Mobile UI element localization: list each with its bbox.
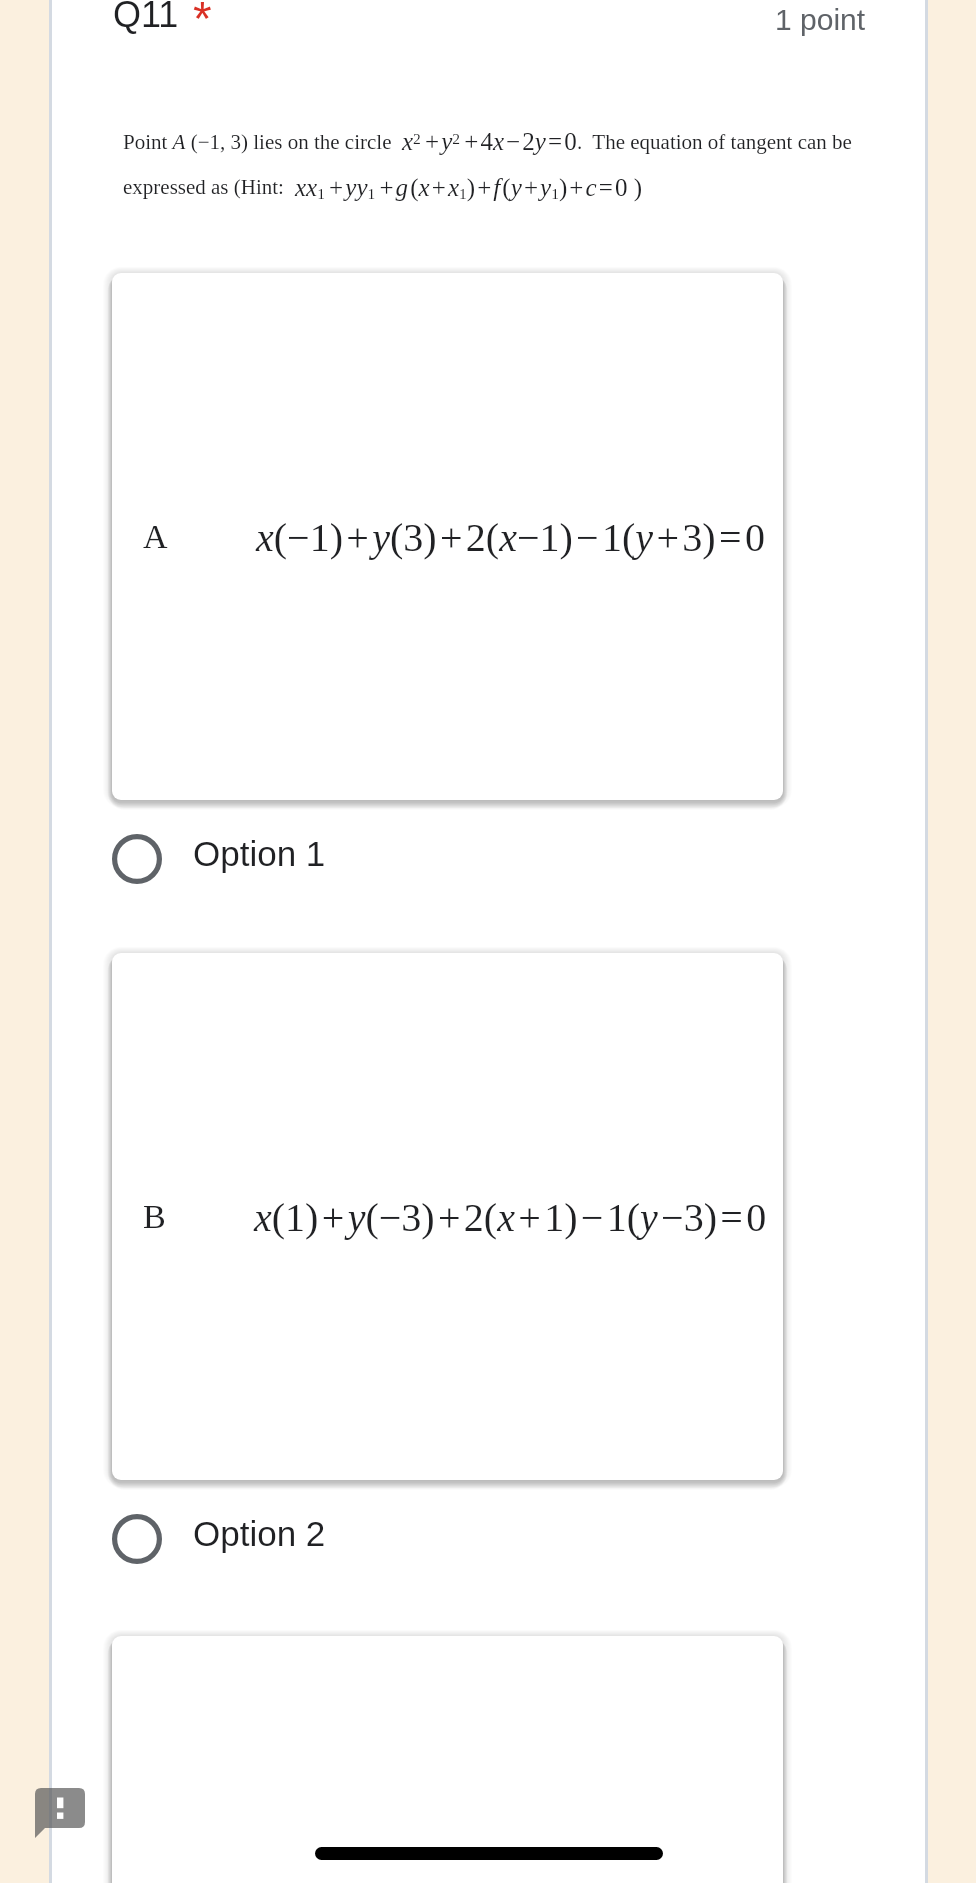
staticText: . The equation of tangent can be: [577, 130, 852, 153]
button[interactable]: C: [112, 1636, 783, 1883]
button[interactable]: B: [112, 953, 783, 1480]
staticText: x(−1) + y(3) + 2(x−1) − 1(y + 3) = 0: [256, 515, 765, 559]
staticText: x(1) + y(−3) + 2(x + 1) − 1(y −3) = 0: [254, 1195, 767, 1239]
staticText: xx1 + yy1 + g (x + x1) + f (y + y1) + c …: [295, 174, 642, 202]
staticText: Option 2: [193, 1514, 326, 1553]
button[interactable]: Send feedback: [35, 1788, 85, 1838]
staticText: 1 point: [775, 3, 866, 37]
staticText: Point A (−1, 3) lies on the circle: [123, 130, 402, 153]
staticText: *: [193, 0, 212, 46]
staticText: A: [143, 518, 168, 556]
staticText: B: [143, 1198, 166, 1236]
button[interactable]: Option 2: [112, 1514, 326, 1564]
staticText: expressed as (Hint:: [123, 175, 295, 198]
staticText: Option 1: [193, 834, 326, 873]
staticText: x2 + y2 + 4x − 2y = 0: [402, 128, 577, 156]
button[interactable]: Option 1: [112, 834, 326, 884]
staticText: Q11: [113, 0, 179, 34]
button[interactable]: A: [112, 273, 783, 800]
